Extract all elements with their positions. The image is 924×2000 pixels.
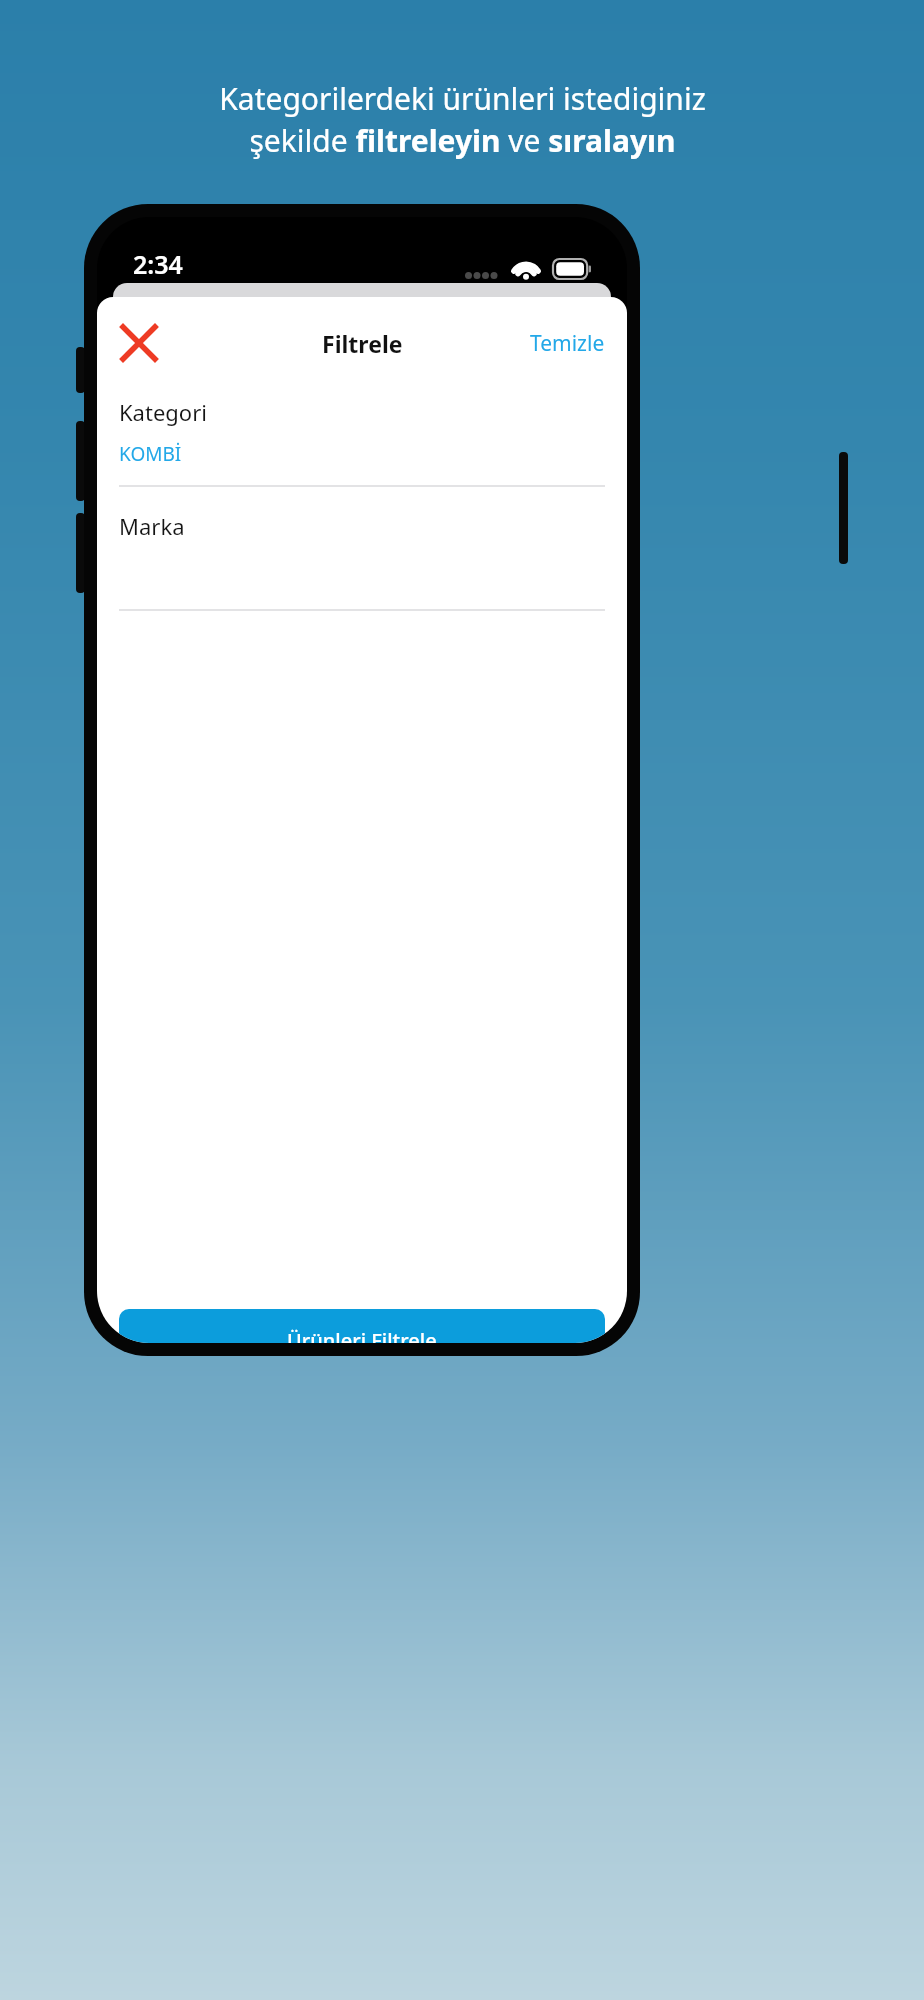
staticText: KOMBİ bbox=[119, 441, 182, 467]
staticText: Kategori bbox=[119, 397, 207, 427]
button[interactable]: Temizle bbox=[522, 319, 613, 368]
staticText: 2:34 bbox=[133, 247, 183, 281]
staticText: Temizle bbox=[530, 329, 605, 358]
button[interactable]: Marka bbox=[97, 487, 627, 609]
button[interactable]: Ürünleri Filtrele bbox=[119, 1309, 605, 1343]
staticText: Filtrele bbox=[322, 328, 403, 359]
button[interactable]: Kapat bbox=[107, 311, 171, 375]
staticText: Ürünleri Filtrele bbox=[287, 1327, 437, 1343]
staticText: Kategorilerdeki ürünleri istediginiz şek… bbox=[219, 78, 706, 161]
button[interactable]: Kategori bbox=[97, 389, 627, 485]
staticText: Marka bbox=[119, 511, 185, 541]
